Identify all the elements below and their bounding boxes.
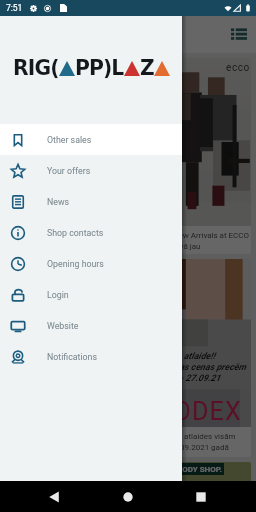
button[interactable]: Website — [0, 310, 182, 341]
button[interactable]: THE BODY SHOP. — [5, 462, 251, 502]
staticText: Website — [47, 321, 79, 331]
staticText: 19. - 27.09.21 — [165, 373, 221, 384]
staticText: 7:51 — [6, 3, 23, 13]
button[interactable]: Recent apps — [191, 487, 211, 507]
staticText: ecco — [226, 62, 250, 74]
button[interactable]: Opening hours — [0, 248, 182, 279]
staticText: RODEX — [157, 397, 242, 426]
button[interactable]: Switch to list view — [231, 28, 247, 41]
button[interactable]: ecco — [5, 58, 251, 254]
staticText: News — [47, 197, 70, 207]
staticText: Notifications — [47, 352, 98, 362]
button[interactable]: Notifications — [0, 341, 182, 372]
button[interactable]: Home — [118, 487, 138, 507]
staticText: 50% atlaide!! — [165, 351, 216, 362]
staticText: Z — [140, 56, 154, 80]
staticText: Jaunā rudens kolekcija jau ir mūsu veika… — [15, 231, 250, 251]
staticText: Other sales — [47, 135, 92, 145]
staticText: Shop contacts — [47, 228, 104, 238]
staticText: PP)L — [75, 56, 124, 80]
button[interactable]: 50% atlaide!! — [5, 259, 251, 457]
button[interactable]: News — [0, 186, 182, 217]
staticText: THE BODY SHOP. — [160, 465, 222, 474]
button[interactable]: Your offers — [0, 155, 182, 186]
staticText: Login — [47, 290, 69, 300]
button[interactable]: Other sales — [0, 124, 182, 155]
staticText: RIG( — [13, 56, 59, 80]
staticText: Rudens izpārdošana RODEX veikalos Rīgā: … — [15, 432, 236, 452]
staticText: Your offers — [47, 166, 91, 176]
button[interactable]: Back — [44, 487, 64, 507]
button[interactable]: Shop contacts — [0, 217, 182, 248]
staticText: pilnas cenas precēm — [165, 362, 246, 373]
button[interactable]: Login — [0, 279, 182, 310]
staticText: Opening hours — [47, 259, 104, 269]
